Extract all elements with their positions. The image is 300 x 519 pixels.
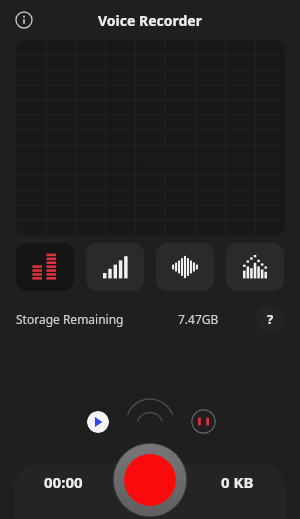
staticText: Voice Recorder (98, 11, 202, 30)
staticText: 00:00 (44, 472, 83, 492)
staticText: ? (267, 310, 274, 328)
staticText: 0 KB (221, 472, 254, 492)
button[interactable]: Play (87, 411, 109, 433)
staticText: 7.47GB (178, 311, 219, 327)
button[interactable]: Visualizer style (86, 243, 144, 291)
button[interactable]: Pause (191, 409, 216, 434)
button[interactable]: Record (113, 443, 187, 517)
staticText: Storage Remaining (16, 311, 124, 327)
button[interactable]: Info (8, 4, 40, 36)
button[interactable]: Visualizer style (226, 243, 284, 291)
button[interactable]: Visualizer style (16, 243, 74, 291)
button[interactable]: Help (256, 305, 284, 333)
button[interactable]: Visualizer style (156, 243, 214, 291)
